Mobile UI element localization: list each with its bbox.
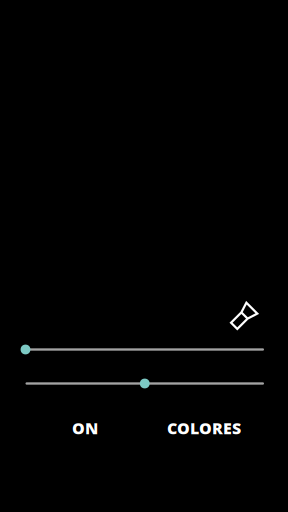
staticText: COLORES xyxy=(167,417,241,439)
button[interactable]: COLORES xyxy=(154,416,254,440)
button[interactable]: ON xyxy=(45,416,125,440)
staticText: ON xyxy=(72,417,98,439)
button[interactable]: Colour xyxy=(21,372,269,394)
button[interactable]: Brightness xyxy=(21,338,269,360)
button[interactable]: Flashlight xyxy=(221,295,265,339)
